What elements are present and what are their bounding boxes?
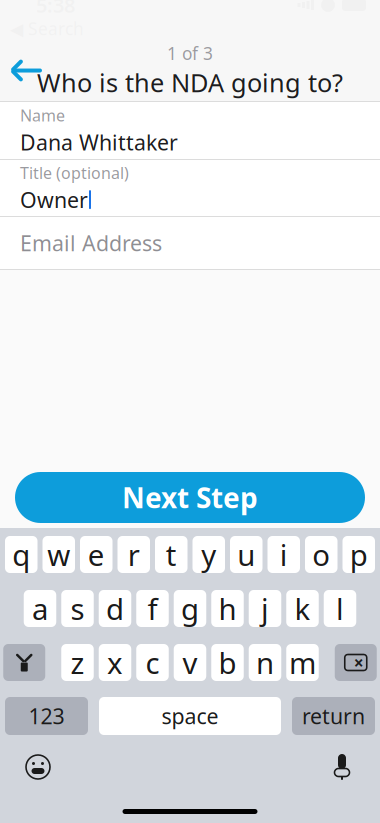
staticText: Next Step <box>122 479 258 516</box>
staticText: u <box>237 535 255 574</box>
staticText: f <box>147 589 157 628</box>
button[interactable]: q <box>5 536 37 573</box>
button[interactable]: x <box>99 644 131 681</box>
button[interactable]: i <box>267 536 300 573</box>
button[interactable]: k <box>286 590 319 627</box>
staticText: x <box>107 643 123 682</box>
button[interactable]: p <box>342 536 375 573</box>
staticText: return <box>302 702 365 730</box>
button[interactable]: t <box>155 536 187 573</box>
button[interactable]: 123 <box>5 697 88 735</box>
staticText: d <box>106 589 124 628</box>
staticText: Name <box>20 105 65 126</box>
button[interactable]: z <box>61 644 94 681</box>
staticText: Email Address <box>20 229 162 257</box>
button[interactable]: Shift <box>3 644 45 681</box>
staticText: m <box>289 643 316 682</box>
button[interactable]: y <box>192 536 225 573</box>
staticText: h <box>218 589 236 628</box>
button[interactable]: Title (optional) <box>0 160 380 216</box>
button[interactable]: r <box>117 536 150 573</box>
button[interactable]: n <box>249 644 281 681</box>
staticText: l <box>336 589 344 628</box>
staticText: k <box>294 589 310 628</box>
staticText: 1 of 3 <box>167 42 213 65</box>
staticText: w <box>47 535 70 574</box>
staticText: j <box>261 589 269 628</box>
button[interactable]: g <box>174 590 206 627</box>
button[interactable]: c <box>136 644 169 681</box>
button[interactable]: space <box>99 697 281 735</box>
staticText: b <box>218 643 236 682</box>
button[interactable]: Next Step <box>15 472 365 523</box>
staticText: Owner <box>20 185 88 214</box>
button[interactable]: w <box>42 536 75 573</box>
button[interactable]: d <box>99 590 131 627</box>
staticText: t <box>166 535 177 574</box>
button[interactable]: l <box>324 590 356 627</box>
staticText: × <box>354 651 364 674</box>
button[interactable]: h <box>211 590 244 627</box>
button[interactable]: Emoji <box>16 747 60 787</box>
button[interactable]: Name <box>0 102 380 159</box>
staticText: n <box>256 643 274 682</box>
staticText: z <box>70 643 84 682</box>
staticText: g <box>181 589 199 628</box>
button[interactable]: f <box>136 590 169 627</box>
button[interactable]: Email Address <box>0 217 380 269</box>
button[interactable]: Back <box>0 48 54 92</box>
button[interactable]: a <box>24 590 56 627</box>
staticText: p <box>350 535 368 574</box>
staticText: o <box>312 535 330 574</box>
staticText: v <box>182 643 197 682</box>
staticText: e <box>88 535 105 574</box>
button[interactable]: e <box>80 536 112 573</box>
staticText: s <box>70 589 84 628</box>
staticText: i <box>280 535 288 574</box>
staticText: Dana Whittaker <box>20 128 178 156</box>
button[interactable]: m <box>286 644 319 681</box>
button[interactable]: Delete <box>335 644 377 681</box>
button[interactable]: o <box>305 536 337 573</box>
button[interactable]: b <box>211 644 244 681</box>
staticText: r <box>128 535 140 574</box>
button[interactable]: j <box>249 590 281 627</box>
staticText: y <box>201 535 216 574</box>
staticText: 123 <box>28 702 64 730</box>
staticText: q <box>12 535 30 574</box>
button[interactable]: Dictate <box>320 747 364 787</box>
staticText: a <box>32 589 48 628</box>
staticText: Who is the NDA going to? <box>37 66 343 99</box>
button[interactable]: v <box>174 644 206 681</box>
button[interactable]: return <box>292 697 375 735</box>
staticText: c <box>145 643 159 682</box>
staticText: space <box>161 702 218 730</box>
button[interactable]: s <box>61 590 94 627</box>
button[interactable]: u <box>230 536 262 573</box>
staticText: Title (optional) <box>20 162 129 183</box>
